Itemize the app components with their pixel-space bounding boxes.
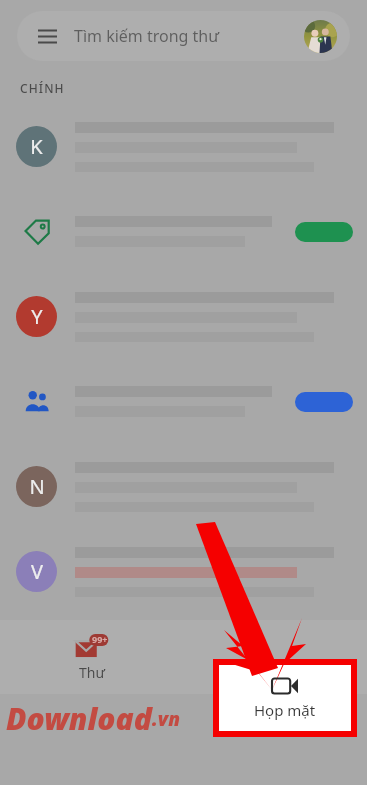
button[interactable] [0, 359, 367, 444]
button[interactable]: Open navigation menu [30, 19, 64, 53]
staticText: K [30, 133, 43, 160]
button[interactable]: V [0, 529, 367, 614]
staticText: Y [31, 303, 43, 330]
button[interactable]: Open navigation menu [17, 11, 350, 61]
button[interactable]: Back [321, 706, 347, 732]
button[interactable] [295, 392, 353, 412]
staticText: N [29, 473, 45, 500]
staticText: Họp mặt [254, 700, 316, 720]
staticText: CHÍNH [20, 80, 65, 96]
staticText: 99+ [92, 633, 108, 645]
staticText: Tìm kiếm trong thư [74, 25, 220, 47]
staticText: .vn [152, 706, 180, 732]
button[interactable] [295, 222, 353, 242]
button[interactable]: Họp mặt [219, 665, 351, 731]
button[interactable]: 99+ [0, 620, 183, 694]
staticText: Thư [79, 663, 105, 682]
button[interactable] [0, 189, 367, 274]
button[interactable]: K [0, 104, 367, 189]
button[interactable]: Y [0, 274, 367, 359]
button[interactable]: Account [304, 20, 337, 53]
button[interactable] [183, 620, 367, 694]
button[interactable]: N [0, 444, 367, 529]
staticText: V [31, 558, 43, 585]
staticText: Download [6, 698, 152, 739]
